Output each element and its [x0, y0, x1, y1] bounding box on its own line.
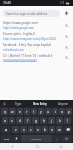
- button[interactable]: New Entry: [27, 100, 52, 107]
- button[interactable]: i: [52, 108, 58, 115]
- button[interactable]: e: [17, 108, 23, 115]
- button[interactable]: Recents: [49, 143, 73, 150]
- button[interactable]: Insert suggestion: [64, 23, 70, 29]
- staticText: z: [15, 128, 17, 132]
- staticText: l: [67, 119, 68, 123]
- button[interactable]: d: [16, 117, 23, 124]
- staticText: Translate: [31, 137, 42, 140]
- button[interactable]: r: [24, 108, 30, 115]
- staticText: u: [47, 110, 49, 114]
- button[interactable]: Voice search: [62, 9, 70, 17]
- staticText: v: [37, 128, 39, 132]
- staticText: https://www.google.com: [3, 21, 38, 25]
- button[interactable]: h: [40, 117, 47, 124]
- button[interactable]: a: [2, 117, 8, 124]
- button[interactable]: Symbols: [1, 135, 12, 142]
- button[interactable]: https://www.google.com: [0, 20, 73, 31]
- button[interactable]: o: [59, 108, 65, 115]
- staticText: d: [19, 119, 21, 123]
- button[interactable]: w: [9, 108, 16, 115]
- staticText: 5.0 | Mitchell '17 Serch '03 | withhold …: [3, 54, 53, 58]
- staticText: q: [4, 110, 6, 114]
- button[interactable]: .: [53, 135, 60, 142]
- staticText: ☺: [3, 102, 7, 105]
- staticText: Type: [15, 102, 22, 106]
- staticText: ?123: [4, 137, 10, 140]
- button[interactable]: b: [42, 126, 48, 133]
- staticText: p: [68, 110, 70, 114]
- button[interactable]: Encore ajtrin - Ingllas E: [0, 31, 73, 42]
- button[interactable]: u: [45, 108, 51, 115]
- staticText: m.instagram.com/p/search: [4, 59, 36, 62]
- staticText: t: [33, 110, 35, 114]
- button[interactable]: Backspace: [63, 126, 72, 133]
- staticText: 10:45: [3, 1, 12, 5]
- button[interactable]: Home: [25, 143, 49, 150]
- staticText: .: [56, 137, 57, 141]
- button[interactable]: Space: [21, 135, 52, 142]
- staticText: b: [44, 128, 46, 132]
- staticText: f: [27, 119, 29, 123]
- button[interactable]: Insert suggestion: [64, 45, 70, 51]
- staticText: m: [58, 128, 61, 132]
- button[interactable]: x: [20, 126, 27, 133]
- button[interactable]: n: [49, 126, 55, 133]
- staticText: j: [51, 119, 52, 123]
- button[interactable]: Insert suggestion: [64, 34, 70, 40]
- staticText: y: [40, 110, 42, 114]
- staticText: i: [55, 110, 56, 114]
- staticText: New Entry: [33, 102, 47, 106]
- button[interactable]: z: [12, 126, 19, 133]
- button[interactable]: Shift: [1, 126, 11, 133]
- button[interactable]: Settings: [13, 135, 20, 142]
- button[interactable]: Go: [61, 135, 72, 142]
- button[interactable]: q: [1, 108, 8, 115]
- staticText: w: [11, 110, 14, 114]
- button[interactable]: s: [9, 117, 15, 124]
- button[interactable]: k: [56, 117, 63, 124]
- button[interactable]: Insert suggestion: [64, 55, 70, 61]
- button[interactable]: g: [32, 117, 39, 124]
- button[interactable]: 5.0 | Mitchell '17 Serch '03 | withhold …: [0, 53, 73, 62]
- button[interactable]: Search or type a web address: [3, 10, 60, 17]
- button[interactable]: l: [64, 117, 71, 124]
- button[interactable]: Facebook - Entry Top oopx kopdid: [0, 42, 73, 53]
- staticText: e: [19, 110, 21, 114]
- staticText: https://www.google.com: [3, 26, 35, 30]
- staticText: r: [26, 110, 28, 114]
- staticText: k: [59, 119, 61, 123]
- button[interactable]: m: [56, 126, 62, 133]
- staticText: g: [35, 119, 37, 123]
- staticText: https://www.instagram.com/p/fkjrzx/2024: [3, 37, 56, 41]
- button[interactable]: v: [35, 126, 41, 133]
- staticText: Search or type a web address: [6, 12, 48, 16]
- staticText: s: [11, 119, 13, 123]
- button[interactable]: Anyone: [52, 100, 73, 107]
- staticText: a: [4, 119, 6, 123]
- button[interactable]: Emoji: [0, 100, 10, 107]
- staticText: n: [51, 128, 53, 132]
- button[interactable]: Type: [10, 100, 27, 107]
- staticText: LTE: [60, 1, 65, 5]
- button[interactable]: f: [24, 117, 31, 124]
- staticText: c: [30, 128, 32, 132]
- staticText: o: [61, 110, 63, 114]
- staticText: h: [43, 119, 45, 123]
- button[interactable]: p: [66, 108, 72, 115]
- staticText: x: [23, 128, 25, 132]
- staticText: Encore ajtrin - Ingllas E: [3, 32, 36, 36]
- button[interactable]: Back: [0, 143, 25, 150]
- button[interactable]: c: [28, 126, 34, 133]
- staticText: Facebook - Entry Top oopx kopdid: [3, 43, 51, 47]
- button[interactable]: y: [38, 108, 44, 115]
- button[interactable]: j: [48, 117, 55, 124]
- staticText: Anyone: [58, 102, 68, 106]
- staticText: m.facebook.com: [3, 48, 24, 52]
- button[interactable]: t: [31, 108, 37, 115]
